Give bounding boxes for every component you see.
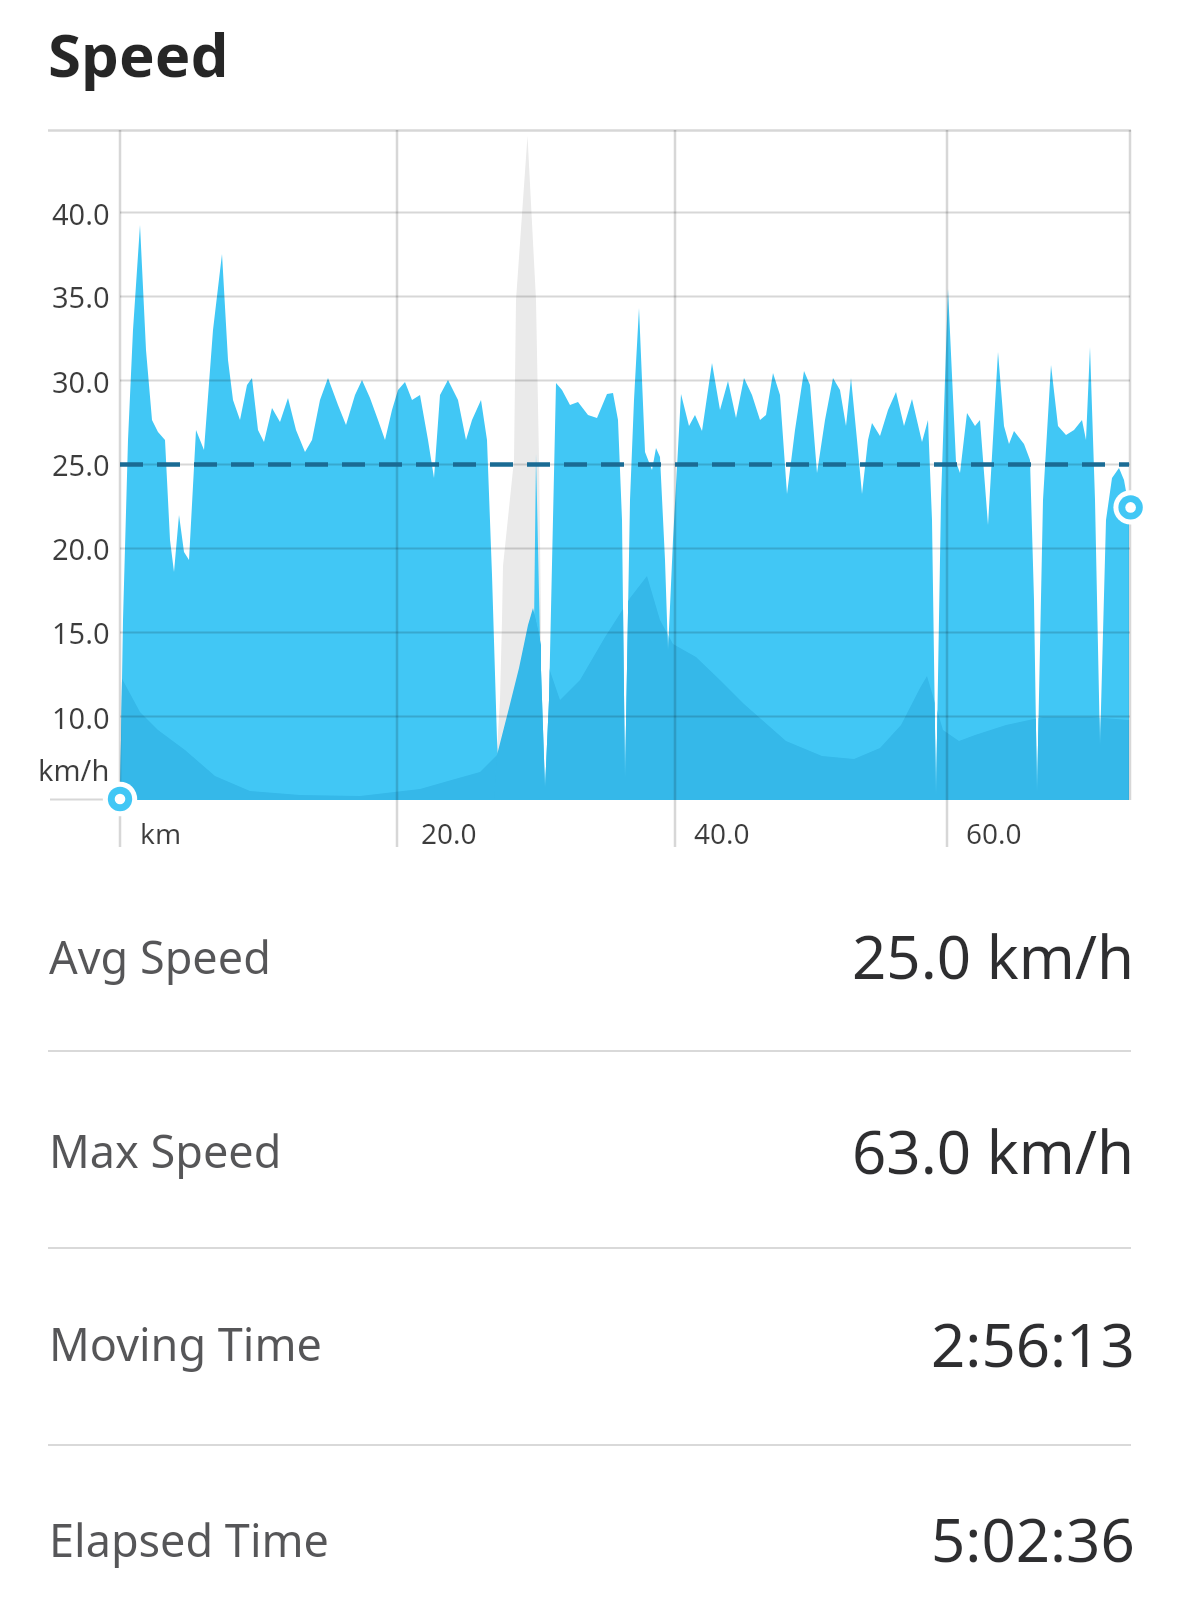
- staticText: 25.0: [52, 445, 110, 484]
- staticText: 35.0: [52, 277, 110, 316]
- staticText: Moving Time: [49, 1313, 322, 1374]
- button[interactable]: Max Speed: [0, 1053, 1179, 1248]
- staticText: 15.0: [52, 613, 110, 652]
- button[interactable]: Moving Time: [0, 1246, 1179, 1441]
- staticText: Elapsed Time: [49, 1509, 329, 1570]
- staticText: 30.0: [52, 362, 110, 401]
- staticText: km: [140, 814, 182, 852]
- button[interactable]: Elapsed Time: [0, 1446, 1179, 1620]
- button[interactable]: Avg Speed: [0, 864, 1179, 1048]
- staticText: 60.0: [966, 814, 1022, 852]
- staticText: 20.0: [52, 529, 110, 568]
- staticText: 25.0 km/h: [852, 915, 1135, 997]
- staticText: Avg Speed: [49, 926, 271, 987]
- staticText: km/h: [38, 750, 110, 789]
- staticText: 20.0: [421, 814, 477, 852]
- staticText: Speed: [48, 13, 229, 95]
- staticText: 5:02:36: [931, 1498, 1135, 1580]
- staticText: 63.0 km/h: [852, 1110, 1135, 1192]
- staticText: Max Speed: [49, 1120, 282, 1181]
- staticText: 40.0: [52, 194, 110, 233]
- staticText: 10.0: [52, 698, 110, 737]
- staticText: 40.0: [694, 814, 750, 852]
- staticText: 2:56:13: [931, 1303, 1135, 1385]
